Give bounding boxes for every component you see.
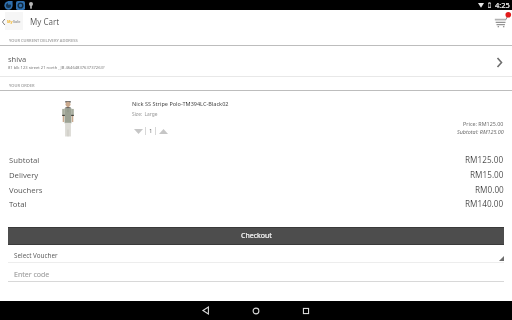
button[interactable]: Home <box>231 301 281 320</box>
button[interactable]: Shopping cart <box>490 10 512 34</box>
staticText: RM0.00 <box>475 184 504 195</box>
staticText: RM125.00 <box>465 154 504 165</box>
staticText: YOUR ORDER <box>9 83 35 88</box>
button[interactable]: shiva <box>0 46 512 77</box>
button[interactable]: Increase quantity <box>156 126 170 136</box>
staticText: Sale <box>13 19 21 24</box>
staticText: 4:25 <box>495 0 510 10</box>
button[interactable]: Recent apps <box>281 301 331 320</box>
staticText: shiva <box>8 54 27 64</box>
staticText: Enter code <box>14 270 50 280</box>
staticText: Select Voucher <box>14 251 58 260</box>
staticText: Total <box>9 199 27 209</box>
staticText: Price: RM125.00 <box>463 120 504 127</box>
staticText: Delivery <box>9 170 39 180</box>
staticText: 1 <box>149 127 153 135</box>
staticText: Subtotal <box>9 155 40 165</box>
staticText: My Cart <box>30 16 60 27</box>
button[interactable]: Back <box>0 12 6 32</box>
staticText: Subtotal: RM125.00 <box>457 128 504 135</box>
button[interactable]: Enter code <box>8 268 504 282</box>
staticText: Checkout <box>241 231 272 241</box>
staticText: YOUR CURRENT DELIVERY ADDRESS <box>9 38 78 43</box>
staticText: RM15.00 <box>470 169 504 180</box>
staticText: Size: Large <box>132 111 158 118</box>
staticText: RM140.00 <box>465 198 504 209</box>
staticText: Nick SS Stripe Polo-TM394LC-Black02 <box>132 100 229 107</box>
button[interactable]: Decrease quantity <box>131 126 145 136</box>
staticText: My <box>7 19 13 24</box>
staticText: Vouchers <box>9 185 43 195</box>
button[interactable]: Select Voucher <box>8 249 504 263</box>
button[interactable]: Checkout <box>8 227 504 245</box>
button[interactable]: Back <box>181 301 231 320</box>
staticText: 81 blk 123 street 21 north , JB 46464837… <box>8 65 105 71</box>
